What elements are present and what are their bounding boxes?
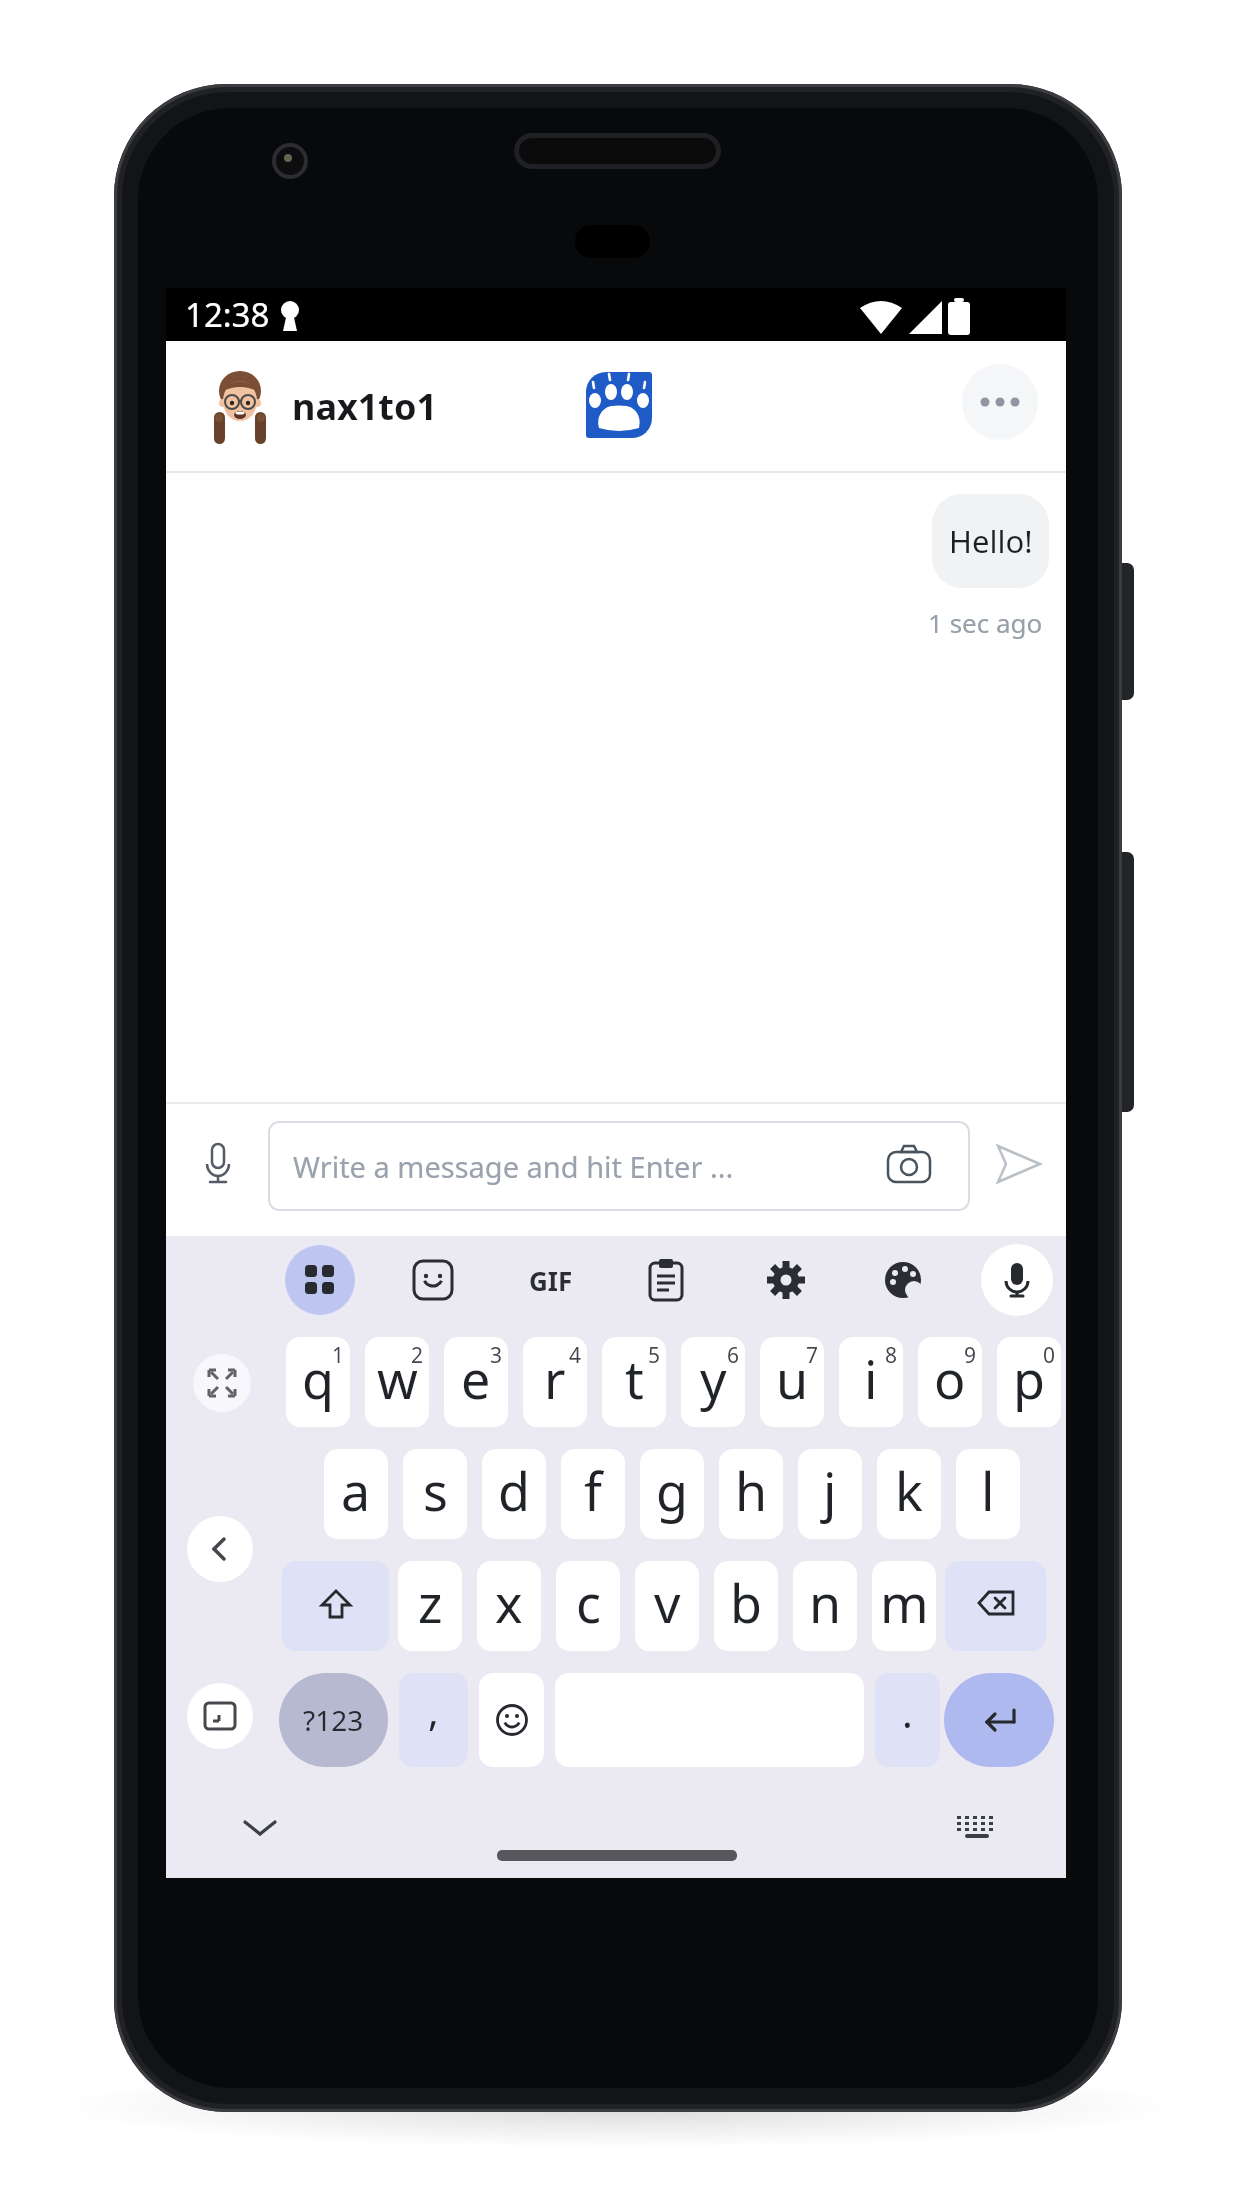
staticText: y — [700, 1343, 727, 1414]
staticText: u — [776, 1343, 809, 1414]
button[interactable]: t — [602, 1337, 666, 1427]
staticText: Write a message and hit Enter ... — [293, 1147, 734, 1186]
button[interactable] — [883, 1260, 923, 1300]
button[interactable]: f — [561, 1449, 625, 1539]
staticText: i — [864, 1343, 878, 1414]
staticText: . — [902, 1685, 913, 1739]
staticText: Hello! — [949, 520, 1033, 562]
button[interactable]: o — [918, 1337, 982, 1427]
button[interactable]: Write a message and hit Enter ... — [268, 1121, 970, 1211]
staticText: 0 — [1043, 1341, 1056, 1370]
button[interactable]: g — [640, 1449, 704, 1539]
button[interactable]: y — [681, 1337, 745, 1427]
staticText: w — [377, 1343, 418, 1414]
staticText: , — [428, 1683, 439, 1737]
staticText: t — [625, 1343, 644, 1414]
button[interactable]: . — [875, 1673, 940, 1767]
staticText: 1 — [332, 1341, 345, 1370]
button[interactable]: q — [286, 1337, 350, 1427]
staticText: 1 sec ago — [928, 605, 1043, 640]
staticText: m — [880, 1567, 929, 1638]
staticText: d — [498, 1455, 530, 1526]
button[interactable] — [649, 1259, 683, 1301]
button[interactable]: ?123 — [279, 1673, 388, 1767]
staticText: s — [423, 1455, 448, 1526]
staticText: 5 — [648, 1341, 661, 1370]
button[interactable] — [187, 1683, 253, 1749]
button[interactable]: j — [798, 1449, 862, 1539]
button[interactable]: w — [365, 1337, 429, 1427]
button[interactable] — [996, 1144, 1042, 1184]
staticText: 8 — [885, 1341, 898, 1370]
button[interactable] — [202, 1144, 234, 1188]
button[interactable] — [193, 1354, 251, 1412]
staticText: 3 — [490, 1341, 503, 1370]
button[interactable]: d — [482, 1449, 546, 1539]
button[interactable] — [944, 1673, 1054, 1767]
button[interactable] — [764, 1258, 808, 1302]
staticText: p — [1013, 1343, 1045, 1414]
button[interactable] — [945, 1561, 1046, 1651]
button[interactable]: n — [793, 1561, 857, 1651]
button[interactable]: x — [477, 1561, 541, 1651]
staticText: b — [730, 1567, 762, 1638]
button[interactable] — [955, 1814, 999, 1844]
staticText: z — [418, 1567, 443, 1638]
button[interactable] — [962, 364, 1038, 440]
button[interactable]: GIF — [521, 1250, 581, 1310]
button[interactable]: z — [398, 1561, 462, 1651]
button[interactable] — [886, 1144, 932, 1184]
button[interactable]: s — [403, 1449, 467, 1539]
button[interactable]: k — [877, 1449, 941, 1539]
button[interactable]: b — [714, 1561, 778, 1651]
staticText: x — [495, 1567, 523, 1638]
staticText: f — [584, 1455, 602, 1526]
button[interactable]: r — [523, 1337, 587, 1427]
staticText: nax1to1 — [292, 382, 438, 431]
staticText: GIF — [529, 1263, 573, 1298]
staticText: j — [823, 1455, 837, 1526]
staticText: 2 — [411, 1341, 424, 1370]
button[interactable] — [586, 372, 652, 438]
button[interactable]: l — [956, 1449, 1020, 1539]
button[interactable]: i — [839, 1337, 903, 1427]
staticText: h — [735, 1455, 768, 1526]
staticText: r — [544, 1343, 566, 1414]
button[interactable]: m — [872, 1561, 936, 1651]
button[interactable]: , — [399, 1673, 468, 1767]
button[interactable] — [243, 1820, 277, 1838]
staticText: 9 — [964, 1341, 977, 1370]
button[interactable]: p — [997, 1337, 1061, 1427]
button[interactable] — [981, 1244, 1053, 1316]
staticText: k — [895, 1455, 923, 1526]
button[interactable]: u — [760, 1337, 824, 1427]
staticText: c — [576, 1567, 601, 1638]
staticText: ?123 — [303, 1701, 364, 1739]
staticText: 7 — [806, 1341, 819, 1370]
staticText: g — [656, 1455, 688, 1526]
staticText: v — [654, 1567, 681, 1638]
button[interactable] — [479, 1673, 544, 1767]
button[interactable]: c — [556, 1561, 620, 1651]
button[interactable]: h — [719, 1449, 783, 1539]
staticText: l — [981, 1455, 995, 1526]
staticText: e — [461, 1343, 491, 1414]
staticText: 6 — [727, 1341, 740, 1370]
staticText: o — [934, 1343, 966, 1414]
button[interactable] — [413, 1260, 453, 1300]
staticText: n — [809, 1567, 842, 1638]
staticText: 4 — [569, 1341, 582, 1370]
button[interactable]: e — [444, 1337, 508, 1427]
button[interactable]: a — [324, 1449, 388, 1539]
staticText: 12:38 — [185, 292, 270, 337]
staticText: a — [341, 1455, 371, 1526]
button[interactable]: v — [635, 1561, 699, 1651]
button[interactable] — [282, 1561, 389, 1651]
button[interactable] — [187, 1516, 253, 1582]
button[interactable] — [285, 1245, 355, 1315]
staticText: q — [302, 1343, 334, 1414]
